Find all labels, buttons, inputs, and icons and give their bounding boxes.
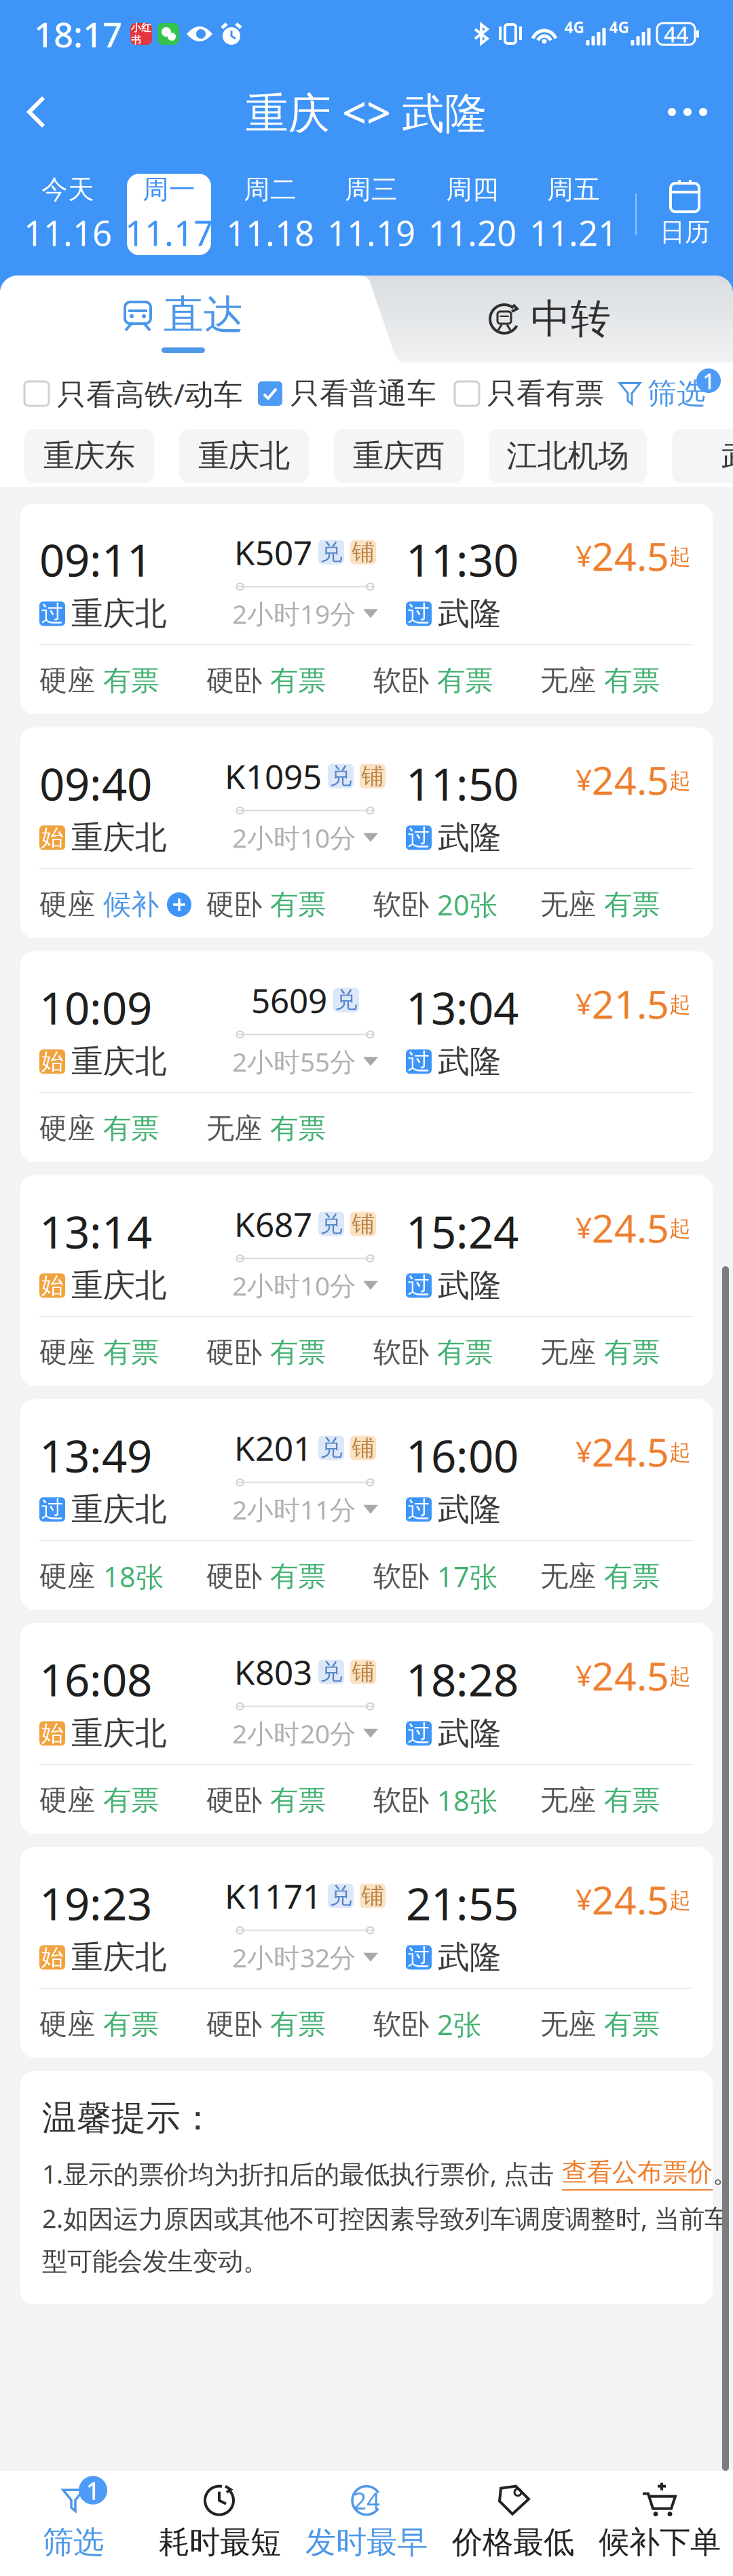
staticText: 有票: [270, 887, 326, 922]
staticText: 有票: [270, 1559, 326, 1594]
staticText: 20张: [437, 886, 497, 923]
button[interactable]: 只看普通车: [258, 368, 421, 419]
button[interactable]: 周五: [531, 174, 616, 255]
staticText: 2小时10分: [232, 1268, 356, 1303]
button[interactable]: 直达: [0, 276, 400, 362]
button[interactable]: 24: [293, 2484, 440, 2561]
button[interactable]: 13:49: [20, 1399, 713, 1610]
button[interactable]: 更多: [642, 68, 733, 156]
staticText: 11.19: [327, 210, 415, 255]
button[interactable]: 重庆西: [334, 429, 464, 483]
button[interactable]: 筛选: [619, 368, 706, 419]
staticText: 11.17: [125, 210, 213, 255]
staticText: K803: [234, 1650, 312, 1694]
staticText: 重庆北: [71, 594, 167, 633]
staticText: 18:28: [406, 1650, 519, 1709]
staticText: 过: [408, 600, 430, 628]
button[interactable]: 16:08: [20, 1623, 713, 1834]
staticText: 重庆东: [43, 437, 135, 475]
button[interactable]: 09:40: [20, 727, 713, 938]
staticText: 中转: [531, 295, 611, 343]
staticText: 无座: [540, 1559, 596, 1594]
button[interactable]: 13:14: [20, 1175, 713, 1386]
staticText: 有票: [270, 2007, 326, 2042]
button[interactable]: 只看高铁/动车: [24, 368, 221, 419]
staticText: 11:30: [406, 530, 519, 589]
staticText: 有票: [103, 1335, 159, 1370]
staticText: 价格最低: [452, 2524, 574, 2561]
staticText: 4G: [609, 17, 629, 37]
staticText: ¥: [576, 1880, 592, 1918]
staticText: 查看公布票价: [562, 2157, 713, 2188]
staticText: 武隆: [438, 1042, 502, 1081]
button[interactable]: 今天: [26, 174, 110, 255]
staticText: 过: [408, 824, 430, 852]
staticText: 13:14: [39, 1202, 152, 1261]
staticText: 直达: [164, 290, 244, 339]
staticText: 型可能会发生变动。: [42, 2246, 268, 2277]
button[interactable]: 候补下单: [586, 2484, 733, 2561]
staticText: 硬卧: [206, 1559, 262, 1594]
staticText: 始: [41, 824, 63, 852]
staticText: 只看普通车: [290, 376, 436, 411]
staticText: 24.5: [592, 530, 669, 582]
staticText: 硬座: [39, 1111, 95, 1146]
button[interactable]: 价格最低: [440, 2484, 586, 2561]
staticText: 21:55: [406, 1874, 519, 1933]
staticText: 软卧: [373, 1559, 429, 1594]
staticText: 硬座: [39, 1335, 95, 1370]
staticText: 24.5: [592, 1650, 669, 1701]
button[interactable]: 只看有票: [455, 368, 588, 419]
staticText: 武隆: [438, 818, 502, 857]
staticText: 只看有票: [487, 376, 604, 411]
staticText: 无座: [540, 2007, 596, 2042]
staticText: K507: [234, 530, 312, 574]
staticText: 硬座: [39, 2007, 95, 2042]
button[interactable]: 耗时最短: [147, 2484, 293, 2561]
staticText: 周五: [547, 173, 600, 206]
staticText: 铺: [352, 1210, 374, 1238]
staticText: 武隆: [438, 594, 502, 633]
button[interactable]: 周四: [430, 174, 514, 255]
button[interactable]: 09:11: [20, 504, 713, 714]
staticText: 武隆: [438, 1714, 502, 1753]
staticText: 起: [669, 1215, 691, 1242]
staticText: 15:24: [406, 1202, 519, 1261]
staticText: 无座: [540, 663, 596, 698]
staticText: 17张: [437, 1558, 497, 1595]
staticText: 有票: [103, 663, 159, 698]
staticText: 11.20: [428, 210, 516, 255]
staticText: 过: [408, 1943, 430, 1971]
staticText: 24.5: [592, 1426, 669, 1477]
button[interactable]: 周三: [329, 174, 413, 255]
staticText: ¥: [576, 760, 592, 799]
button[interactable]: 返回: [0, 68, 73, 156]
staticText: 有票: [604, 663, 660, 698]
button[interactable]: 日历: [652, 174, 718, 255]
button[interactable]: 江北机场: [489, 429, 647, 483]
staticText: 09:11: [39, 530, 152, 589]
staticText: 重庆北: [71, 1042, 167, 1081]
staticText: 起: [669, 1887, 691, 1914]
staticText: 有票: [270, 1783, 326, 1818]
staticText: 2小时10分: [232, 820, 356, 855]
staticText: 周二: [244, 173, 297, 206]
staticText: 硬卧: [206, 2007, 262, 2042]
staticText: K1095: [225, 754, 322, 798]
staticText: 软卧: [373, 663, 429, 698]
staticText: 无座: [540, 887, 596, 922]
button[interactable]: 武: [672, 429, 733, 483]
staticText: 候补: [103, 887, 159, 922]
staticText: 发时最早: [305, 2524, 428, 2561]
button[interactable]: 周一: [127, 174, 211, 255]
button[interactable]: 中转: [366, 276, 733, 362]
button[interactable]: 重庆北: [179, 429, 309, 483]
staticText: 日历: [660, 217, 710, 248]
staticText: 兑: [320, 1210, 342, 1238]
button[interactable]: 周二: [228, 174, 312, 255]
button[interactable]: 重庆东: [24, 429, 154, 483]
button[interactable]: 1: [0, 2484, 147, 2561]
staticText: 24.5: [592, 1202, 669, 1253]
button[interactable]: 10:09: [20, 951, 713, 1162]
button[interactable]: 19:23: [20, 1847, 713, 2058]
